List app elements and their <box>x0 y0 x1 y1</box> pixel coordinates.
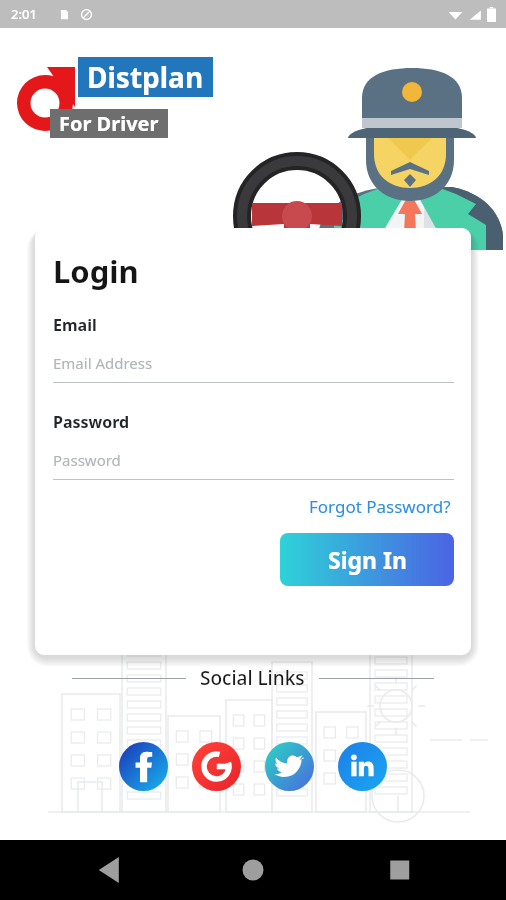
button[interactable]: Distplan <box>87 58 204 96</box>
staticText: Sign In <box>328 544 407 575</box>
button[interactable]: Twitter <box>265 742 314 791</box>
staticText: Password <box>53 450 121 470</box>
staticText: For Driver <box>59 110 159 137</box>
staticText: Password <box>53 411 130 433</box>
button[interactable]: Email Address <box>53 353 454 383</box>
staticText: Login <box>53 250 139 292</box>
staticText: Social Links <box>200 665 305 691</box>
button[interactable]: Forgot Password? <box>306 492 454 521</box>
staticText: Email <box>53 314 97 336</box>
button[interactable]: Google <box>192 742 241 791</box>
button[interactable]: LinkedIn <box>338 742 387 791</box>
button[interactable]: Password <box>53 450 454 480</box>
button[interactable]: Sign In <box>280 533 454 586</box>
staticText: 2:01 <box>11 5 37 23</box>
staticText: Distplan <box>87 58 204 96</box>
staticText: Email Address <box>53 353 153 373</box>
button[interactable]: Facebook <box>119 742 168 791</box>
